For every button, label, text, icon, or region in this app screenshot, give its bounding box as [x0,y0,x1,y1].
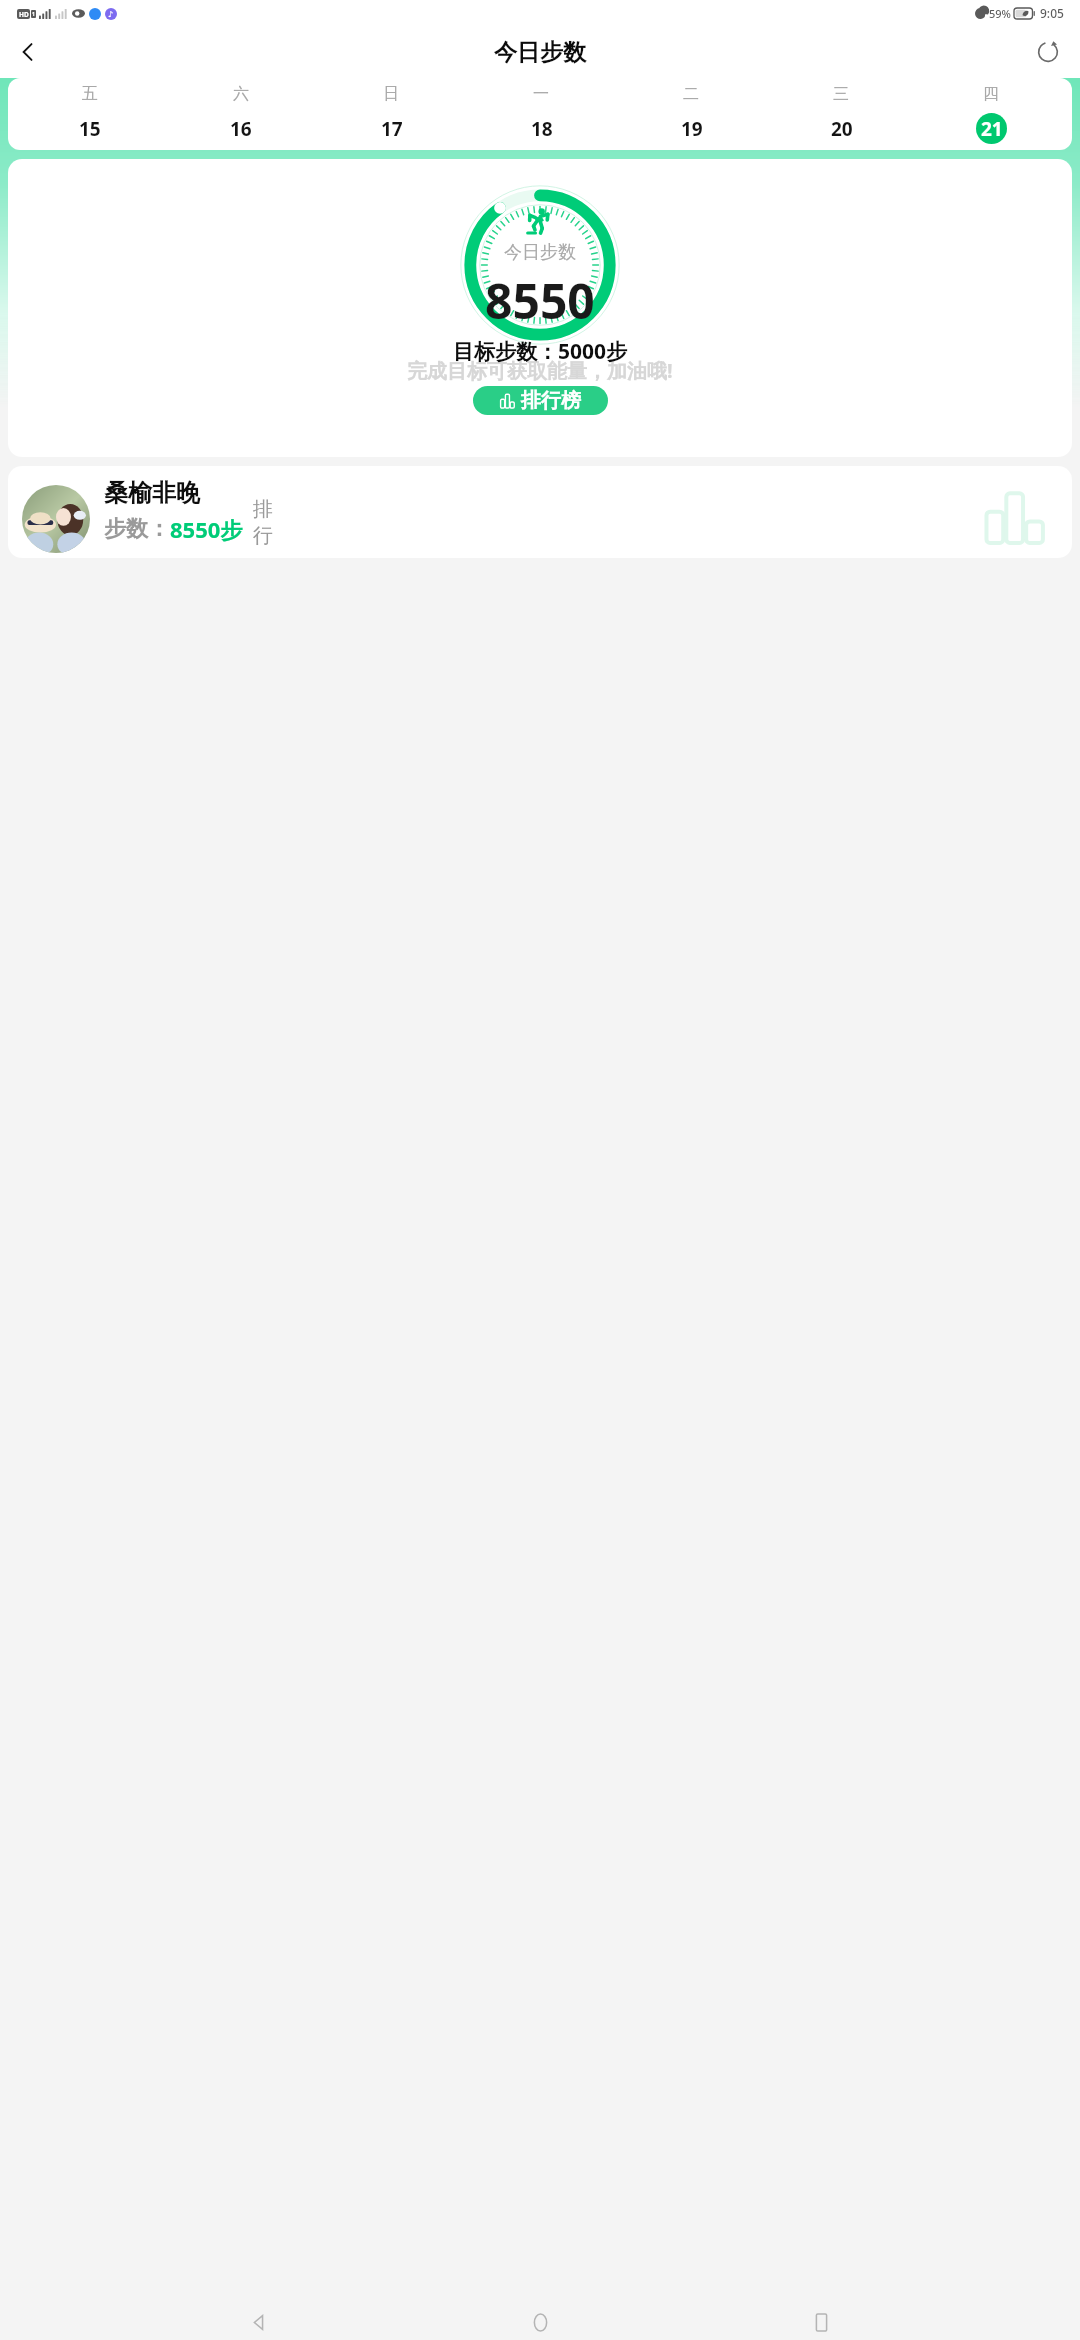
staticText: 17 [381,116,403,142]
button[interactable]: Back [237,2304,281,2340]
button[interactable]: 18 [526,113,557,144]
staticText: 五 [82,84,98,104]
staticText: 完成目标可获取能量，加油哦! [407,357,673,384]
staticText: 排行榜 [521,388,581,413]
staticText: 二 [683,84,699,104]
button[interactable]: 16 [225,113,256,144]
button[interactable]: 排行榜 [473,386,608,415]
staticText: 今日步数 [494,38,586,67]
staticText: 8550步 [170,514,243,544]
staticText: ♪ [108,10,114,19]
staticText: 18 [531,116,553,142]
staticText: 9:05 [1040,5,1064,21]
staticText: 步数： [104,515,170,543]
staticText: 8550 [485,268,595,333]
staticText: 21 [981,116,1003,142]
button[interactable]: 21 [976,113,1007,144]
staticText: 六 [233,84,249,104]
staticText: 15 [79,116,101,142]
button[interactable]: Back [4,28,52,76]
staticText: 今日步数 [504,241,576,264]
staticText: 一 [533,84,549,104]
staticText: HD [19,10,29,19]
staticText: 四 [983,84,999,104]
staticText: 桑榆非晚 [104,478,200,508]
button[interactable]: 15 [74,113,105,144]
staticText: 16 [230,116,252,142]
button[interactable]: 20 [826,113,857,144]
staticText: 19 [681,116,703,142]
button[interactable]: 桑榆非晚 [8,466,1072,558]
staticText: 三 [833,84,849,104]
button[interactable]: Recents [799,2304,843,2340]
staticText: 20 [831,116,853,142]
button[interactable]: Home [518,2304,562,2340]
button[interactable]: 19 [676,113,707,144]
staticText: 1 [32,11,35,18]
staticText: 59% [989,6,1011,21]
button[interactable]: 17 [376,113,407,144]
staticText: 日 [383,84,399,104]
button[interactable]: Refresh [1024,28,1072,76]
staticText: 目标步数：5000步 [453,337,628,366]
staticText: 排 行 [253,497,273,548]
